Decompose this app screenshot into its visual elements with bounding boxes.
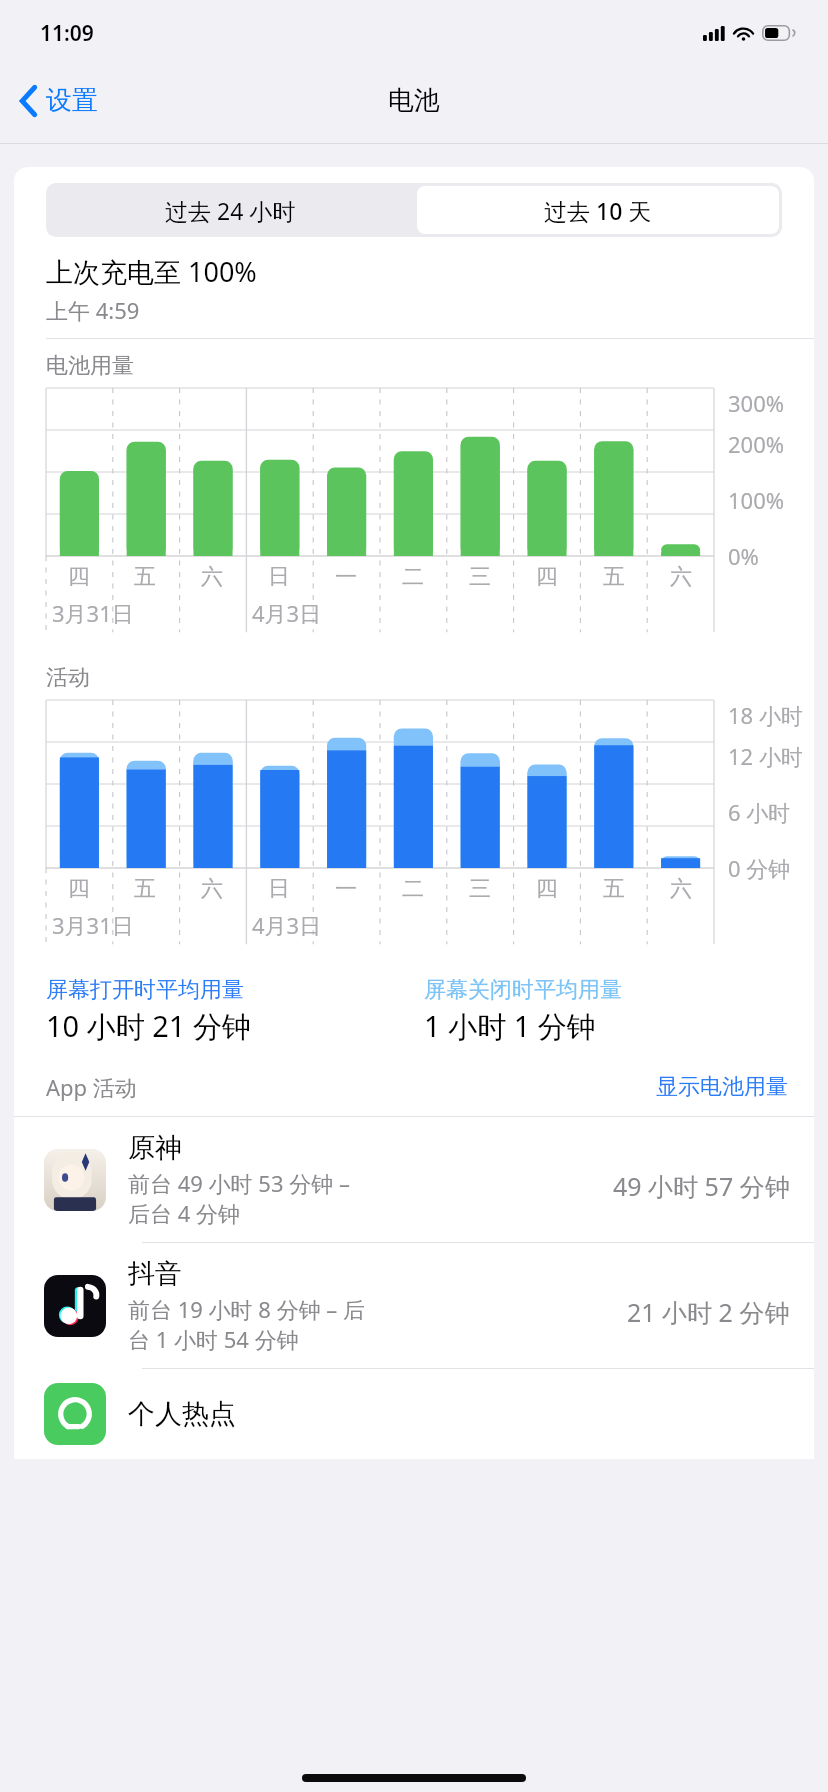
staticText: 一 <box>335 875 357 903</box>
staticText: 200% <box>728 429 785 459</box>
staticText: 六 <box>201 563 223 591</box>
staticText: 电池用量 <box>46 352 134 380</box>
staticText: 二 <box>402 563 424 591</box>
staticText: 3月31日 <box>52 910 134 940</box>
button[interactable]: 原神 <box>14 1117 814 1242</box>
staticText: 上午 4:59 <box>46 295 140 325</box>
staticText: 六 <box>670 875 692 903</box>
staticText: 前台 49 小时 53 分钟 – <box>128 1168 350 1198</box>
staticText: 六 <box>201 875 223 903</box>
staticText: 二 <box>402 875 424 903</box>
staticText: 6 小时 <box>728 797 791 827</box>
staticText: 个人热点 <box>128 1397 236 1431</box>
button[interactable]: 个人热点 <box>14 1369 814 1459</box>
staticText: 五 <box>134 563 156 591</box>
button[interactable]: 抖音 <box>14 1243 814 1368</box>
staticText: 活动 <box>46 664 90 692</box>
staticText: 11:09 <box>40 19 94 48</box>
staticText: 四 <box>536 875 558 903</box>
staticText: 显示电池用量 <box>656 1073 788 1101</box>
staticText: 屏幕打开时平均用量 <box>46 976 244 1004</box>
staticText: 台 1 小时 54 分钟 <box>128 1324 299 1354</box>
button[interactable]: 过去 10 天 <box>417 186 779 234</box>
staticText: 100% <box>728 485 785 515</box>
staticText: 五 <box>603 563 625 591</box>
staticText: 1 小时 1 分钟 <box>424 1006 596 1046</box>
staticText: 四 <box>68 563 90 591</box>
staticText: App 活动 <box>46 1072 137 1102</box>
staticText: 四 <box>68 875 90 903</box>
staticText: 屏幕关闭时平均用量 <box>424 976 622 1004</box>
staticText: 上次充电至 100% <box>46 253 257 290</box>
staticText: 前台 19 小时 8 分钟 – 后 <box>128 1294 366 1324</box>
staticText: 过去 24 小时 <box>165 195 296 226</box>
staticText: 49 小时 57 分钟 <box>613 1169 790 1203</box>
staticText: 抖音 <box>128 1257 182 1291</box>
staticText: 3月31日 <box>52 598 134 628</box>
staticText: 0 分钟 <box>728 853 791 883</box>
staticText: 五 <box>134 875 156 903</box>
staticText: 三 <box>469 563 491 591</box>
staticText: 21 小时 2 分钟 <box>627 1295 790 1329</box>
staticText: 原神 <box>128 1131 182 1165</box>
staticText: 设置 <box>46 84 98 117</box>
staticText: 4月3日 <box>252 598 322 628</box>
staticText: 一 <box>335 563 357 591</box>
staticText: 电池 <box>388 84 440 117</box>
button[interactable]: 显示电池用量 <box>656 1073 788 1101</box>
staticText: 日 <box>268 875 290 903</box>
staticText: 0% <box>728 541 759 571</box>
staticText: 300% <box>728 388 785 418</box>
staticText: 4月3日 <box>252 910 322 940</box>
staticText: 六 <box>670 563 692 591</box>
staticText: 四 <box>536 563 558 591</box>
staticText: 12 小时 <box>728 741 803 771</box>
staticText: 过去 10 天 <box>544 195 652 226</box>
staticText: 五 <box>603 875 625 903</box>
button[interactable]: 过去 24 小时 <box>46 183 414 237</box>
staticText: 18 小时 <box>728 700 803 730</box>
staticText: 后台 4 分钟 <box>128 1198 241 1228</box>
staticText: 日 <box>268 563 290 591</box>
staticText: 10 小时 21 分钟 <box>46 1006 251 1046</box>
button[interactable]: 设置 <box>12 76 106 125</box>
staticText: 三 <box>469 875 491 903</box>
